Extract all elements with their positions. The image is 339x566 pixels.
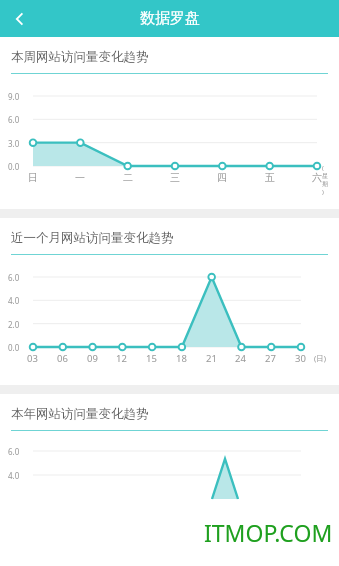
staticText: 数据罗盘 [140,9,200,28]
staticText: 21 [206,352,217,365]
staticText: 9.0 [8,91,20,102]
staticText: 本周网站访问量变化趋势 [11,49,149,65]
staticText: 2.0 [8,319,20,330]
staticText: 06 [57,352,68,365]
staticText: 24 [235,352,246,365]
staticText: 日 [28,171,38,184]
staticText: 4.0 [8,470,20,481]
staticText: 四 [217,171,227,184]
staticText: 六 [312,171,322,184]
staticText: 15 [146,352,157,365]
staticText: 09 [87,352,98,365]
staticText: (日) [314,353,326,363]
staticText: 0.0 [8,342,20,353]
staticText: 二 [123,171,133,184]
staticText: ( [322,164,324,172]
staticText: 4.0 [8,295,20,306]
staticText: 30 [295,352,306,365]
staticText: 03 [27,352,38,365]
staticText: 27 [265,352,276,365]
staticText: 6.0 [8,272,20,283]
staticText: 本年网站访问量变化趋势 [11,406,149,422]
staticText: 星 [322,172,328,180]
staticText: 三 [170,171,180,184]
staticText: 6.0 [8,114,20,125]
staticText: 3.0 [8,138,20,149]
staticText: 五 [265,171,275,184]
staticText: 12 [116,352,127,365]
staticText: 0.0 [8,161,20,172]
staticText: 一 [75,171,85,184]
staticText: ) [322,188,324,196]
staticText: ITMOP.COM [204,517,333,548]
staticText: 18 [176,352,187,365]
staticText: 期 [322,180,328,188]
staticText: 6.0 [8,446,20,457]
button[interactable]: Back [0,0,40,37]
staticText: 近一个月网站访问量变化趋势 [11,230,174,246]
